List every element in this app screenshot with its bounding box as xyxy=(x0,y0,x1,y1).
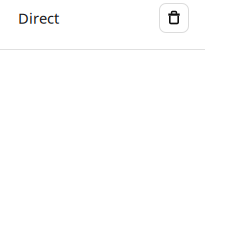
button[interactable]: Delete xyxy=(159,3,189,33)
staticText: Direct xyxy=(18,8,59,28)
